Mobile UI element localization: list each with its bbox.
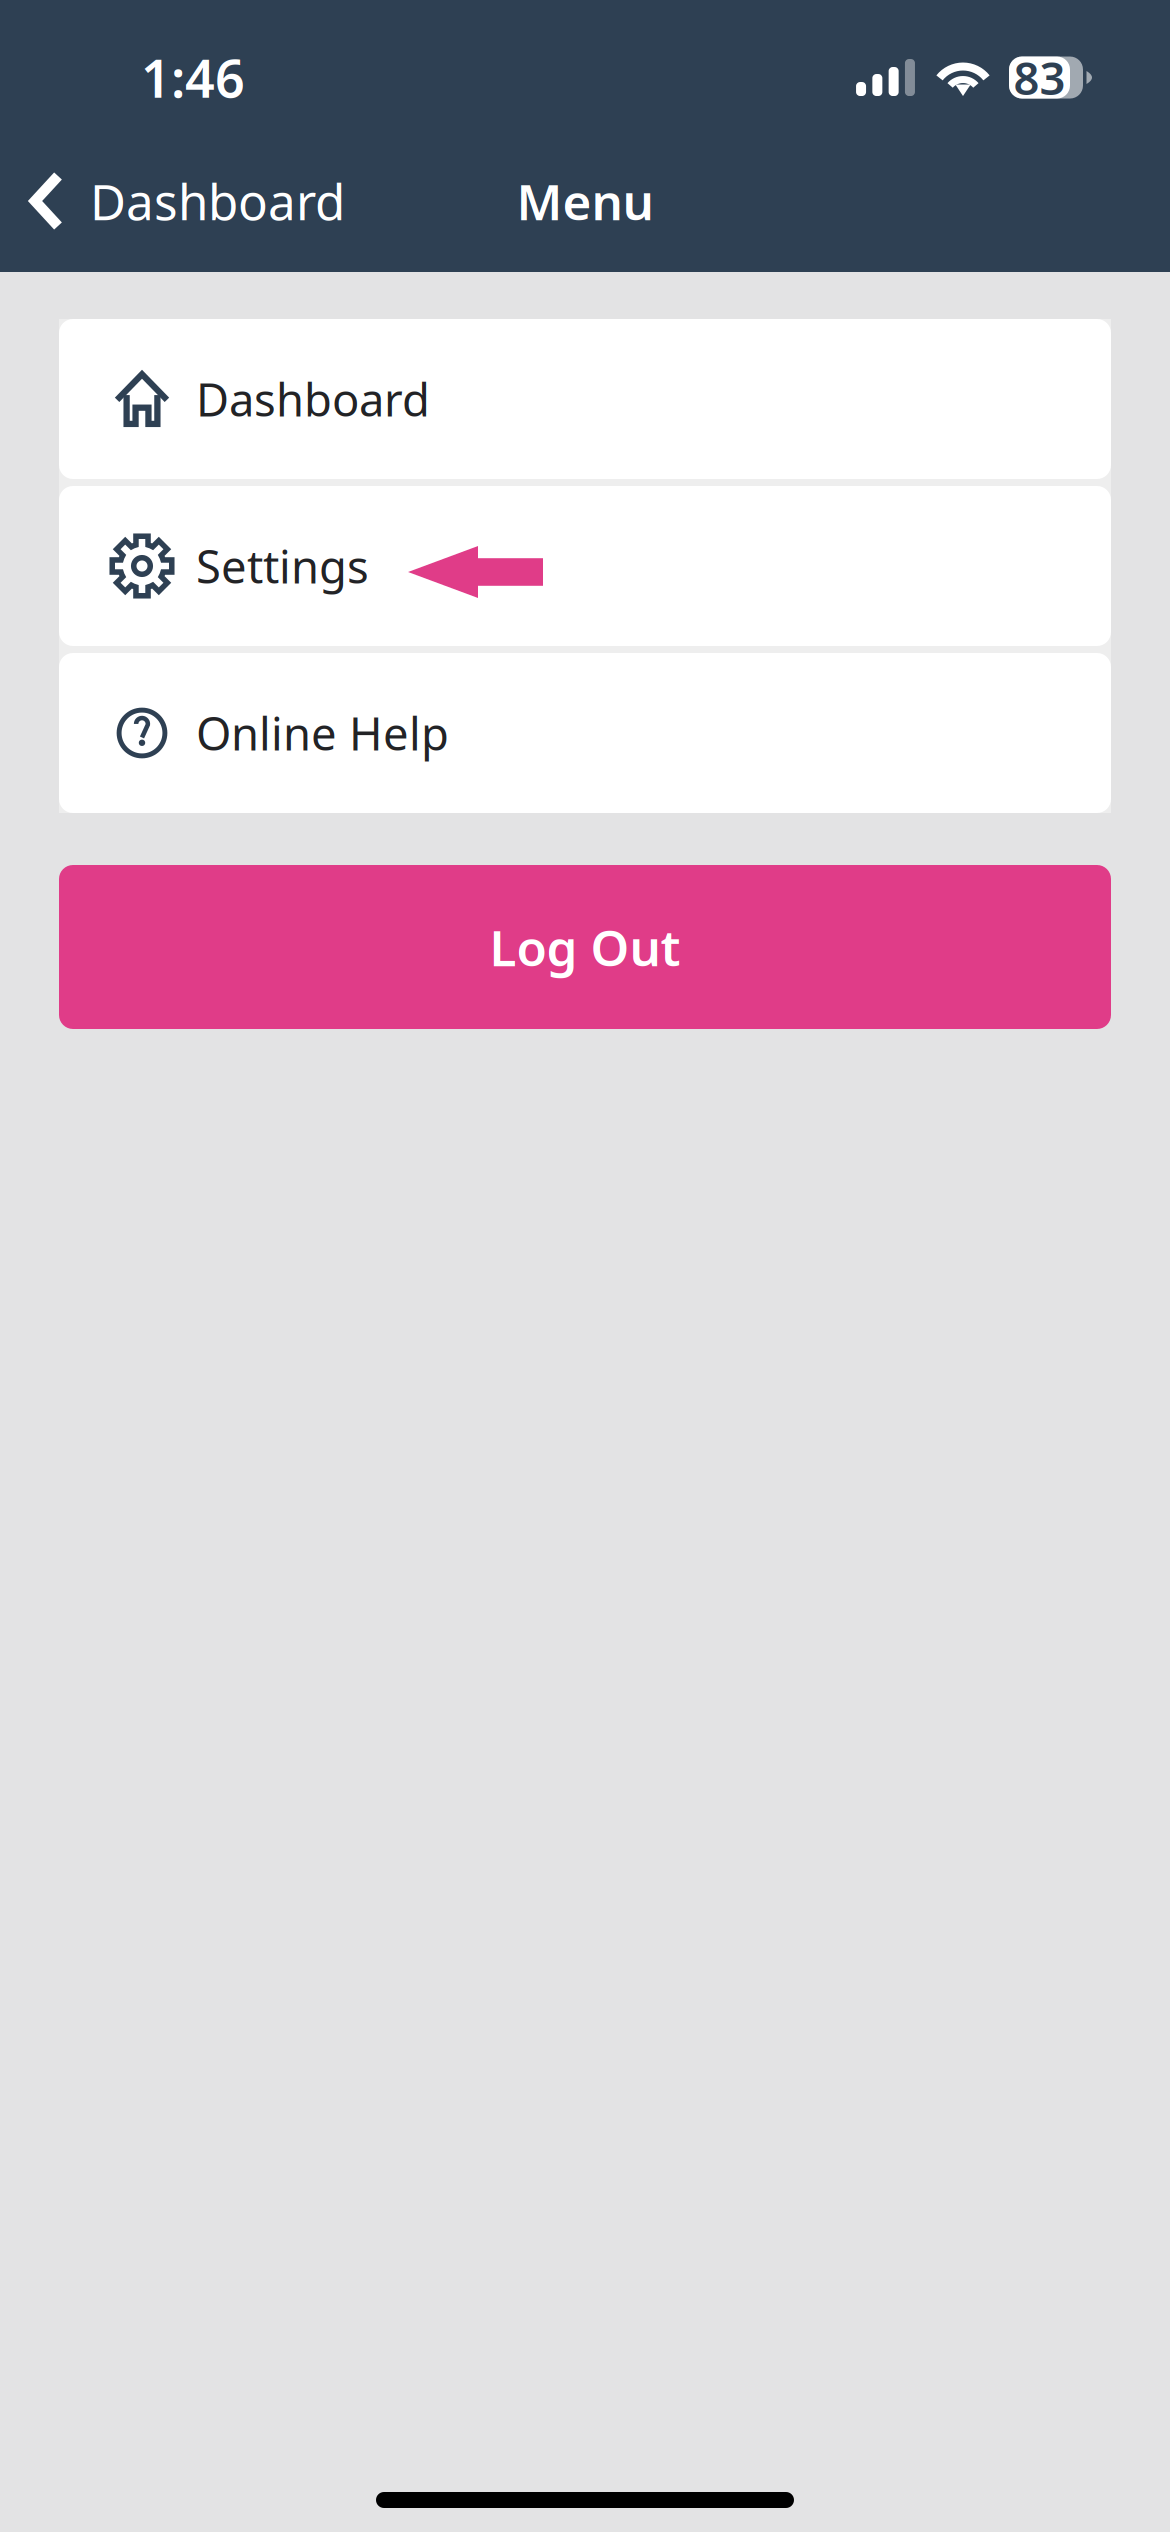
button[interactable]: Dashboard [59, 319, 1111, 479]
staticText: Dashboard [90, 168, 345, 234]
staticText: Menu [516, 168, 653, 234]
staticText: Dashboard [196, 369, 430, 429]
staticText: Settings [196, 536, 369, 596]
staticText: Online Help [196, 703, 449, 763]
button[interactable]: Settings [59, 486, 1111, 646]
button[interactable]: Log Out [59, 865, 1111, 1029]
staticText: 1:46 [141, 43, 245, 112]
button[interactable]: Online Help [59, 653, 1111, 813]
staticText: 83 [1013, 47, 1065, 108]
staticText: Log Out [489, 914, 680, 980]
button[interactable]: Dashboard [0, 150, 367, 252]
